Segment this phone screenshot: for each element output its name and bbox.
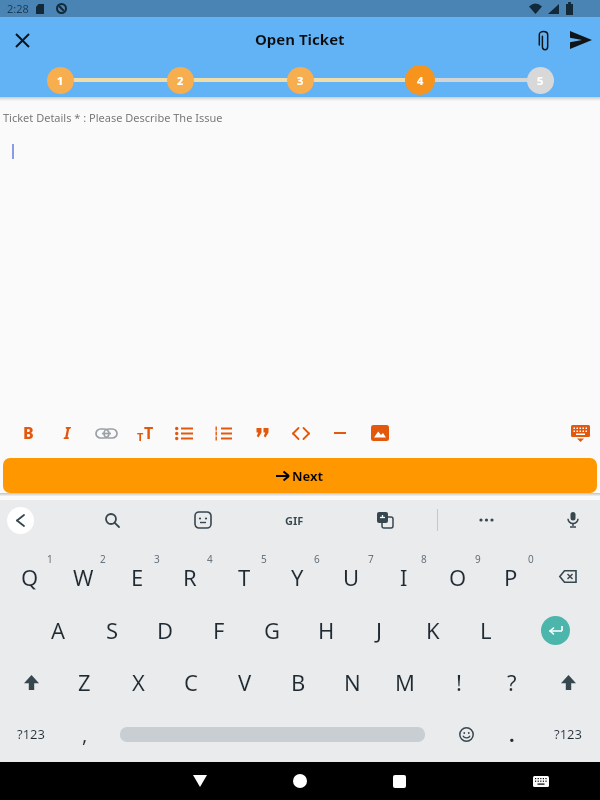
- button[interactable]: [548, 662, 588, 702]
- button[interactable]: K: [413, 610, 453, 650]
- staticText: I: [400, 562, 408, 592]
- button[interactable]: ,: [65, 714, 105, 754]
- button[interactable]: H: [306, 610, 346, 650]
- button[interactable]: [245, 416, 279, 450]
- button[interactable]: [7, 507, 34, 534]
- button[interactable]: G: [252, 610, 292, 650]
- staticText: ?: [507, 667, 517, 697]
- staticText: E: [131, 562, 144, 592]
- button[interactable]: [167, 416, 201, 450]
- button[interactable]: Q: [10, 557, 50, 597]
- button[interactable]: P: [491, 557, 531, 597]
- button[interactable]: W: [63, 557, 103, 597]
- button[interactable]: [521, 762, 561, 800]
- button[interactable]: [548, 556, 588, 596]
- staticText: ?123: [554, 725, 582, 743]
- staticText: T: [238, 562, 251, 592]
- button[interactable]: R: [170, 557, 210, 597]
- staticText: R: [183, 562, 197, 592]
- button[interactable]: B: [11, 416, 45, 450]
- button[interactable]: [558, 505, 588, 535]
- button[interactable]: C: [171, 662, 211, 702]
- staticText: B: [23, 422, 34, 444]
- button[interactable]: [448, 716, 484, 752]
- staticText: I: [64, 422, 71, 444]
- staticText: 3: [154, 552, 160, 566]
- staticText: Q: [21, 562, 39, 592]
- button[interactable]: [363, 416, 397, 450]
- staticText: N: [344, 667, 361, 697]
- button[interactable]: !: [439, 662, 479, 702]
- staticText: W: [73, 562, 94, 592]
- button[interactable]: B: [278, 662, 318, 702]
- staticText: 3: [297, 73, 304, 88]
- button[interactable]: [379, 762, 419, 800]
- staticText: 2: [177, 73, 184, 88]
- button[interactable]: [528, 25, 558, 55]
- button[interactable]: [206, 416, 240, 450]
- staticText: 8: [421, 552, 427, 566]
- button[interactable]: N: [332, 662, 372, 702]
- staticText: O: [449, 562, 467, 592]
- staticText: Z: [78, 667, 91, 697]
- staticText: P: [504, 562, 518, 592]
- button[interactable]: [541, 616, 570, 645]
- button[interactable]: I: [50, 416, 84, 450]
- button[interactable]: 3: [287, 67, 314, 94]
- button[interactable]: ?: [492, 662, 532, 702]
- button[interactable]: 1: [47, 67, 74, 94]
- staticText: K: [426, 615, 440, 645]
- button[interactable]: GIF: [277, 505, 311, 535]
- button[interactable]: [323, 416, 357, 450]
- button[interactable]: I: [384, 557, 424, 597]
- button[interactable]: [11, 662, 51, 702]
- staticText: Open Ticket: [255, 29, 345, 49]
- staticText: G: [264, 615, 281, 645]
- staticText: 4: [207, 552, 213, 566]
- button[interactable]: ?123: [11, 714, 51, 754]
- button[interactable]: L: [466, 610, 506, 650]
- button[interactable]: A: [38, 610, 78, 650]
- staticText: 0: [528, 552, 534, 566]
- button[interactable]: Next: [3, 458, 597, 493]
- button[interactable]: [472, 505, 502, 535]
- button[interactable]: [284, 416, 318, 450]
- button[interactable]: [7, 25, 37, 55]
- staticText: 1: [57, 73, 64, 88]
- button[interactable]: T: [224, 557, 264, 597]
- button[interactable]: Z: [64, 662, 104, 702]
- button[interactable]: 2: [167, 67, 194, 94]
- staticText: 6: [314, 552, 320, 566]
- staticText: 9: [475, 552, 481, 566]
- button[interactable]: J: [359, 610, 399, 650]
- button[interactable]: U: [331, 557, 371, 597]
- button[interactable]: .: [492, 714, 532, 754]
- button[interactable]: [188, 505, 218, 535]
- button[interactable]: [566, 25, 596, 55]
- button[interactable]: S: [92, 610, 132, 650]
- staticText: ,: [82, 721, 88, 748]
- button[interactable]: V: [225, 662, 265, 702]
- button[interactable]: F: [199, 610, 239, 650]
- staticText: S: [106, 615, 119, 645]
- button[interactable]: [180, 762, 220, 800]
- button[interactable]: [97, 505, 127, 535]
- button[interactable]: T: [128, 416, 162, 450]
- button[interactable]: ?123: [548, 714, 588, 754]
- button[interactable]: [280, 762, 320, 800]
- staticText: ?123: [17, 725, 45, 743]
- button[interactable]: Y: [277, 557, 317, 597]
- button[interactable]: 5: [527, 67, 554, 94]
- button[interactable]: X: [118, 662, 158, 702]
- button[interactable]: [89, 416, 123, 450]
- button[interactable]: O: [438, 557, 478, 597]
- button[interactable]: 4: [405, 65, 435, 95]
- button[interactable]: E: [117, 557, 157, 597]
- staticText: .: [509, 721, 515, 748]
- button[interactable]: [370, 505, 400, 535]
- button[interactable]: [563, 416, 597, 450]
- staticText: L: [480, 615, 492, 645]
- button[interactable]: M: [385, 662, 425, 702]
- button[interactable]: D: [145, 610, 185, 650]
